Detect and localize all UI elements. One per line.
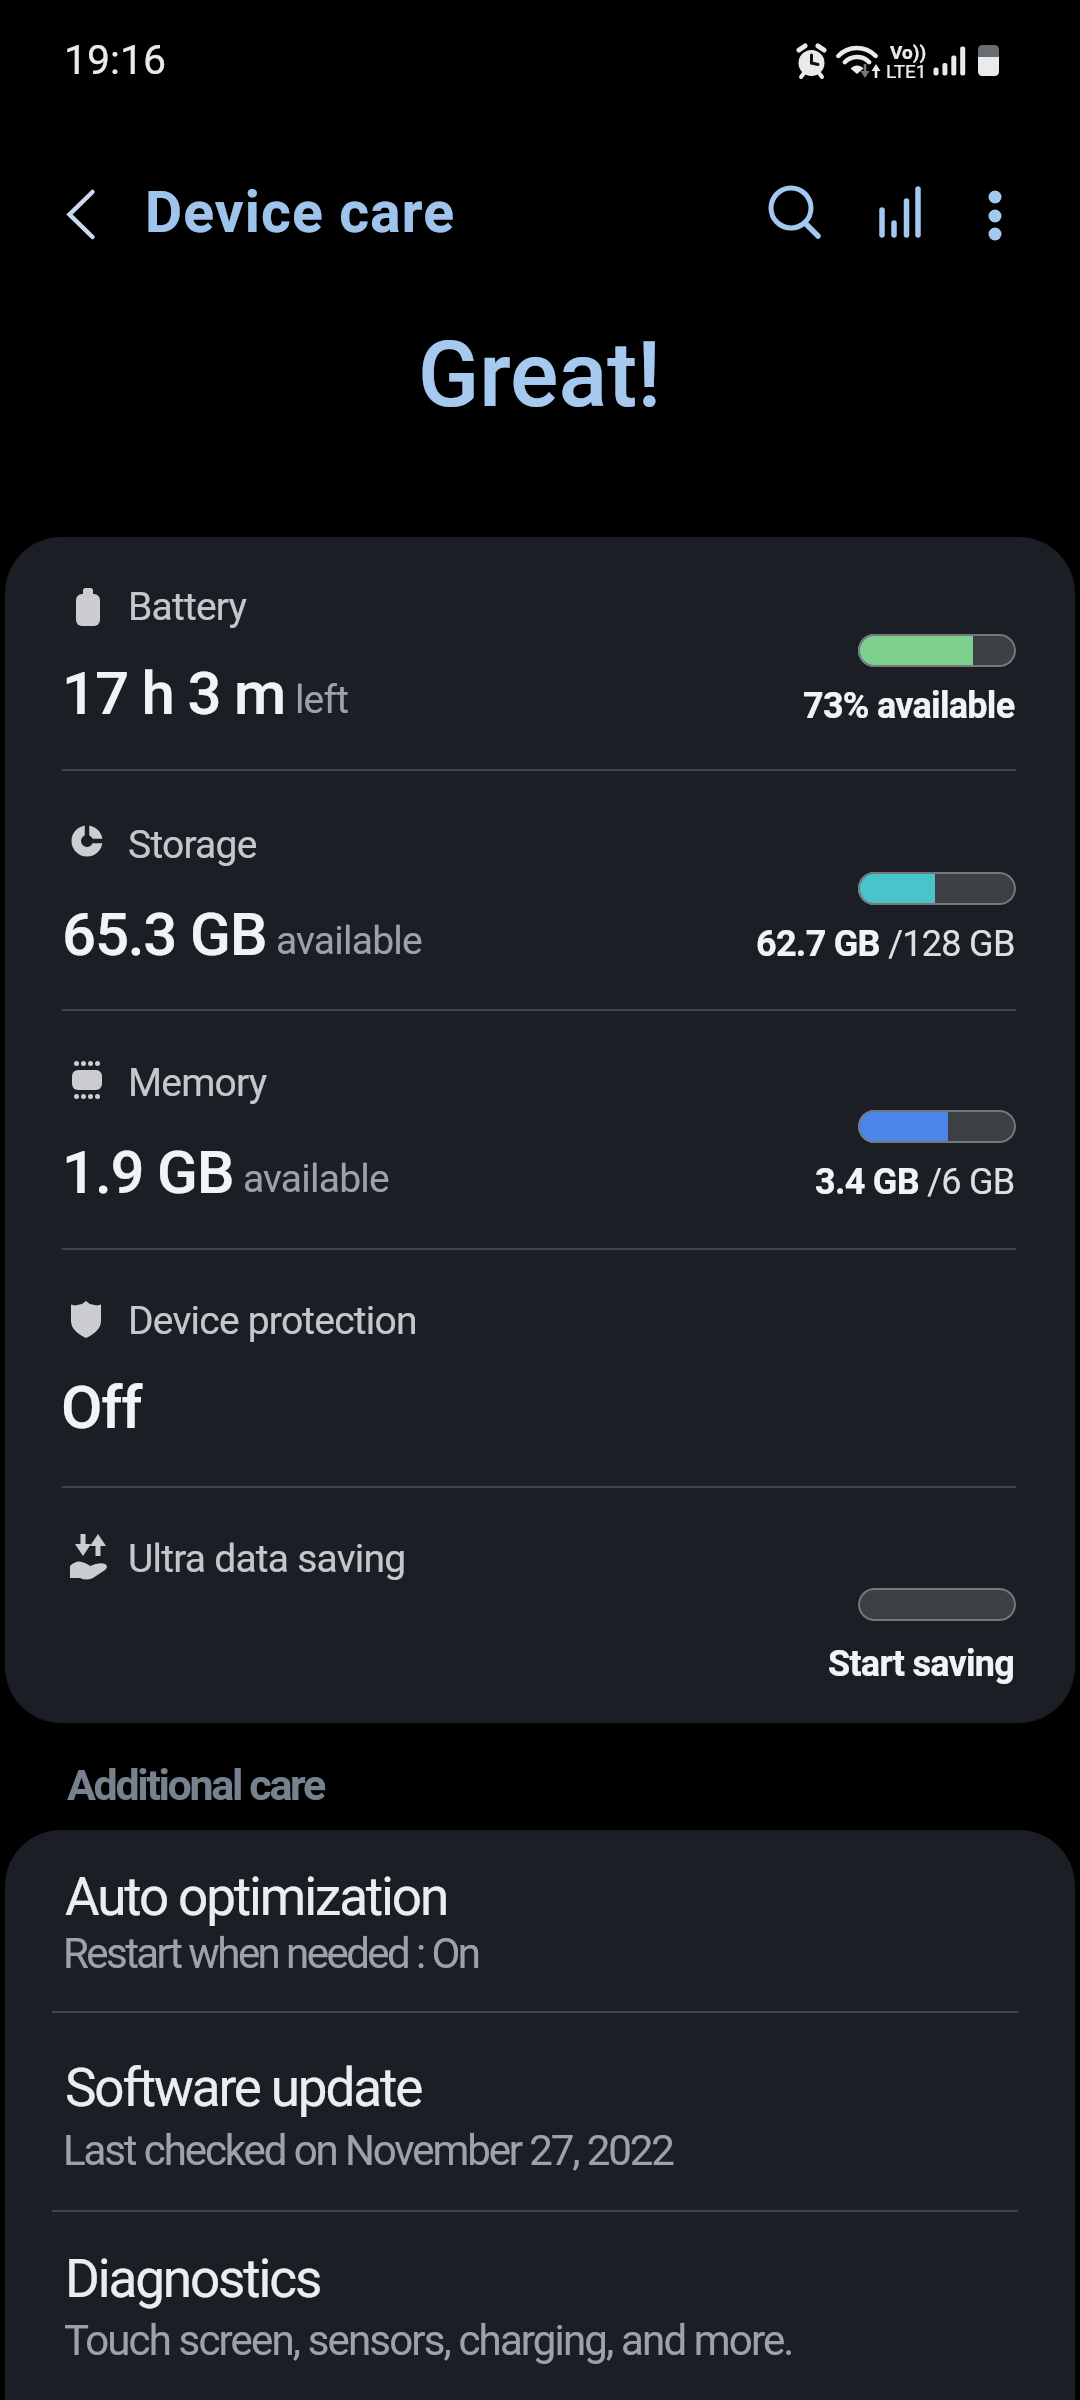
staticText: Device care <box>145 179 456 246</box>
staticText: available <box>267 918 422 964</box>
staticText: Restart when needed : On <box>63 1929 479 1978</box>
staticText: Great! <box>418 323 662 428</box>
staticText: 19:16 <box>64 36 167 84</box>
staticText: Ultra data saving <box>128 1536 406 1582</box>
button[interactable] <box>868 180 932 244</box>
staticText: Storage <box>128 822 257 868</box>
staticText: 17 h 3 m <box>62 658 286 728</box>
staticText: 62.7 GB <box>756 923 880 965</box>
staticText: LTE1 <box>886 60 927 82</box>
button[interactable] <box>5 537 1075 769</box>
staticText: Battery <box>128 584 247 630</box>
staticText: /128 GB <box>880 923 1015 965</box>
staticText: Touch screen, sensors, charging, and mor… <box>64 2316 793 2365</box>
button[interactable] <box>760 180 824 244</box>
staticText: /6 GB <box>919 1161 1015 1203</box>
staticText: Software update <box>65 2057 422 2119</box>
staticText: Start saving <box>828 1643 1015 1685</box>
staticText: Auto optimization <box>65 1866 448 1928</box>
staticText: available <box>234 1156 389 1202</box>
staticText: Vo)) <box>890 41 927 63</box>
staticText: Memory <box>128 1060 267 1106</box>
button[interactable] <box>5 1248 1075 1486</box>
button[interactable] <box>5 1830 1075 2011</box>
staticText: 65.3 GB <box>62 899 267 969</box>
staticText: left <box>286 677 349 723</box>
staticText: Last checked on November 27, 2022 <box>63 2126 673 2175</box>
button[interactable] <box>5 1009 1075 1248</box>
staticText: Device protection <box>128 1298 417 1344</box>
button[interactable] <box>46 178 118 250</box>
staticText: 1.9 GB <box>62 1137 234 1207</box>
button[interactable] <box>963 180 1027 244</box>
button[interactable] <box>5 2210 1075 2400</box>
staticText: Off <box>61 1372 142 1442</box>
staticText: Diagnostics <box>65 2248 321 2310</box>
staticText: Additional care <box>67 1760 324 1810</box>
button[interactable] <box>5 1486 1075 1723</box>
staticText: 73% available <box>803 685 1015 727</box>
button[interactable] <box>5 2011 1075 2210</box>
button[interactable] <box>5 769 1075 1009</box>
staticText: 3.4 GB <box>815 1161 919 1203</box>
